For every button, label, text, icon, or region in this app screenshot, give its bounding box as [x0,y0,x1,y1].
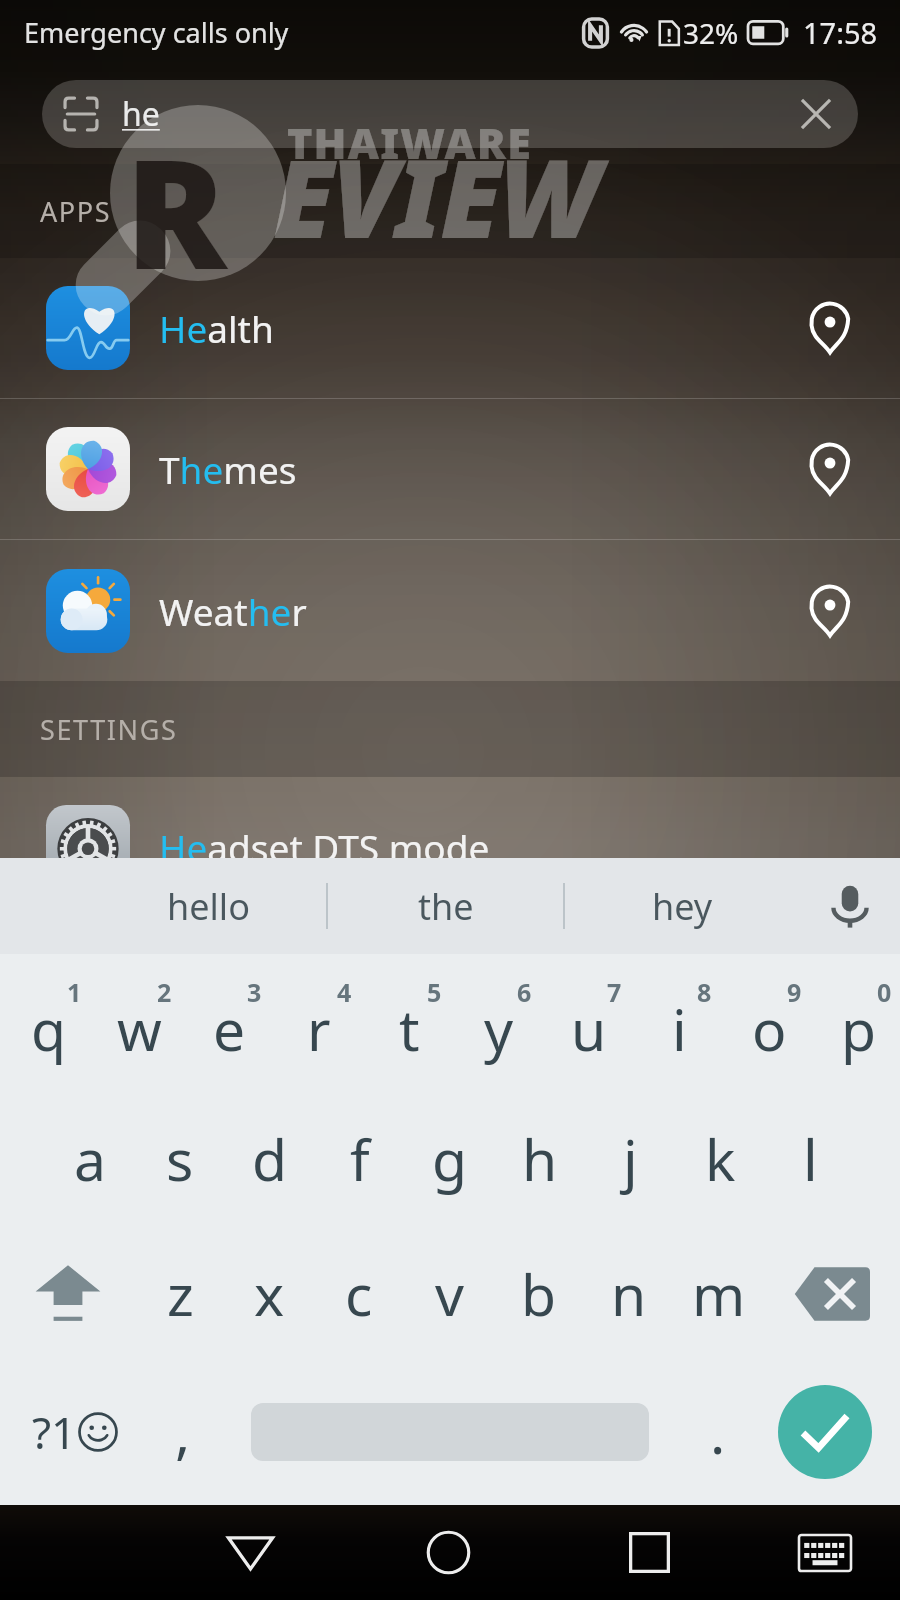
staticText: x [254,1255,285,1333]
button[interactable]: Shortcut Weather [782,563,878,659]
staticText: m [692,1255,746,1333]
button[interactable]: m [674,1225,764,1363]
button[interactable]: r [270,954,360,1092]
button[interactable]: s [135,1092,225,1225]
staticText: APPS [40,193,112,230]
button[interactable]: q [0,954,90,1092]
staticText: THAIWARE [287,113,532,172]
button[interactable]: Home [383,1505,513,1600]
staticText: hey [652,882,713,931]
staticText: f [350,1120,370,1198]
button[interactable]: Headset DTS mode [0,777,900,917]
staticText: 6 [517,975,532,1009]
staticText: c [345,1255,373,1333]
button[interactable]: h [495,1092,585,1225]
button[interactable]: x [225,1225,314,1363]
button[interactable]: . [685,1363,750,1501]
staticText: Health [159,303,274,353]
staticText: 17:58 [803,13,878,52]
button[interactable]: u [540,954,630,1092]
staticText: q [31,990,67,1068]
staticText: he [122,92,160,136]
button[interactable]: a [45,1092,135,1225]
button[interactable]: Back [185,1505,315,1600]
staticText: s [166,1120,194,1198]
staticText: k [705,1120,736,1198]
button[interactable]: Scan code [42,80,858,148]
button[interactable]: l [765,1092,855,1225]
staticText: n [611,1255,647,1333]
staticText: 8 [697,975,712,1009]
staticText: t [399,990,420,1068]
button[interactable]: y [450,954,540,1092]
staticText: o [752,990,787,1068]
button[interactable]: hello [90,858,326,954]
staticText: u [571,990,607,1068]
button[interactable]: Hide keyboard [760,1505,890,1600]
staticText: R [125,109,227,313]
button[interactable]: Shortcut Health [782,280,878,376]
staticText: 4 [337,975,352,1009]
staticText: 1 [67,975,82,1009]
button[interactable]: f [315,1092,405,1225]
button[interactable]: Voice input [800,858,900,954]
staticText: EVIEW [273,123,599,270]
button[interactable]: Space [215,1363,685,1501]
staticText: 5 [427,975,442,1009]
button[interactable]: v [404,1225,494,1363]
staticText: w [117,990,162,1068]
staticText: Themes [159,444,297,494]
staticText: 9 [787,975,802,1009]
button[interactable]: e [180,954,270,1092]
button[interactable]: k [675,1092,765,1225]
other: Scan code [62,95,100,133]
staticText: a [74,1120,106,1198]
staticText: Weather [159,586,307,636]
button[interactable]: , [150,1363,215,1501]
staticText: h [522,1120,558,1198]
staticText: r [307,990,331,1068]
staticText: z [167,1255,194,1333]
button[interactable]: t [360,954,450,1092]
button[interactable]: p [810,954,900,1092]
staticText: Emergency calls only [24,14,289,51]
button[interactable]: Health [0,258,900,398]
button[interactable]: w [90,954,180,1092]
button[interactable]: j [585,1092,675,1225]
button[interactable]: b [494,1225,584,1363]
button[interactable]: Enter [750,1363,900,1501]
button[interactable]: Clear search [784,82,848,146]
staticText: b [521,1255,557,1333]
button[interactable]: i [630,954,720,1092]
staticText: y [484,990,514,1068]
button[interactable]: g [405,1092,495,1225]
staticText: j [623,1120,638,1198]
staticText: hello [167,882,250,931]
staticText: 3 [247,975,262,1009]
staticText: 7 [607,975,622,1009]
button[interactable]: Shortcut Themes [782,421,878,517]
staticText: 2 [157,975,172,1009]
button[interactable]: c [314,1225,404,1363]
button[interactable]: Weather [0,540,900,681]
button[interactable]: z [136,1225,225,1363]
button[interactable]: Backspace [764,1225,900,1363]
staticText: Headset DTS mode [159,822,490,872]
staticText: e [213,990,246,1068]
staticText: l [803,1120,818,1198]
staticText: , [175,1393,191,1471]
button[interactable]: Recent apps [584,1505,714,1600]
button[interactable]: hey [565,858,800,954]
button[interactable]: the [328,858,563,954]
button[interactable]: Symbols and emoji [0,1363,150,1501]
staticText: g [432,1120,468,1198]
staticText: d [252,1120,288,1198]
button[interactable]: Shift [0,1225,136,1363]
button[interactable]: d [225,1092,315,1225]
button[interactable]: n [584,1225,674,1363]
staticText: . [710,1393,726,1471]
button[interactable]: o [720,954,810,1092]
button[interactable]: Themes [0,399,900,539]
staticText: ?1 [32,1402,77,1462]
staticText: i [672,990,687,1068]
